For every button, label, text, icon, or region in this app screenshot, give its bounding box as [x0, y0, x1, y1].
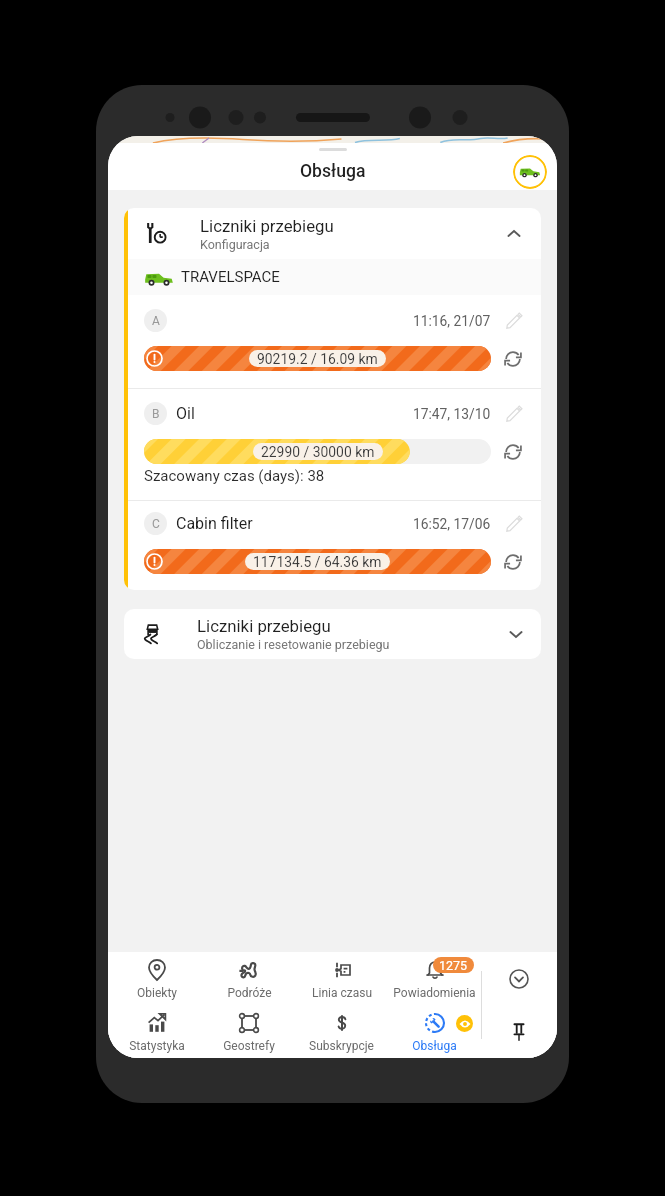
button[interactable]: B [128, 389, 541, 500]
staticText: Statystyka [129, 1039, 185, 1053]
staticText: Obsługa [300, 161, 366, 182]
button[interactable]: Pin [481, 1005, 557, 1058]
staticText: 11:16, 21/07 [413, 313, 491, 329]
staticText: 90219.2 / 16.09 km [257, 351, 378, 367]
button[interactable]: Subskrypcje [295, 1005, 388, 1058]
staticText: A [152, 314, 160, 328]
button[interactable]: Reset [502, 348, 524, 370]
button[interactable]: Edit [504, 404, 524, 424]
button[interactable]: Collapse [481, 952, 557, 1005]
staticText: TRAVELSPACE [181, 268, 280, 286]
staticText: 16:52, 17/06 [413, 516, 491, 532]
staticText: Liczniki przebiegu [200, 216, 334, 236]
staticText: Szacowany czas (days): 38 [144, 467, 325, 485]
staticText: Subskrypcje [309, 1039, 374, 1053]
staticText: 22990 / 30000 km [261, 444, 375, 460]
staticText: Powiadomienia [393, 986, 476, 1000]
button[interactable]: 1275 [388, 952, 481, 1005]
staticText: Konfiguracja [200, 237, 270, 252]
staticText: 1275 [439, 958, 468, 973]
button[interactable]: Podróże [203, 952, 295, 1005]
button[interactable]: Liczniki przebiegu [124, 609, 541, 659]
button[interactable]: Reset [502, 441, 524, 463]
staticText: Obsługa [412, 1039, 457, 1053]
staticText: B [152, 407, 160, 421]
button[interactable]: A [128, 295, 541, 388]
staticText: 17:47, 13/10 [413, 406, 491, 422]
button[interactable]: Geostrefy [203, 1005, 295, 1058]
button[interactable]: Obiekty [111, 952, 203, 1005]
button[interactable]: Liczniki przebiegu [128, 208, 541, 259]
button[interactable]: Obsługa [388, 1005, 481, 1058]
staticText: Podróże [227, 986, 272, 1000]
staticText: Obliczanie i resetowanie przebiegu [197, 637, 390, 652]
staticText: 117134.5 / 64.36 km [253, 554, 382, 570]
staticText: Geostrefy [223, 1039, 275, 1053]
button[interactable]: TRAVELSPACE [128, 259, 541, 295]
button[interactable]: Reset [502, 551, 524, 573]
button[interactable]: C [128, 501, 541, 590]
staticText: Obiekty [137, 986, 177, 1000]
button[interactable]: Edit [504, 514, 524, 534]
button[interactable]: Edit [504, 311, 524, 331]
button[interactable]: Vehicle [513, 155, 547, 189]
staticText: Cabin filter [176, 514, 253, 533]
button[interactable]: Statystyka [111, 1005, 203, 1058]
staticText: Liczniki przebiegu [197, 616, 331, 636]
staticText: Oil [176, 404, 195, 423]
staticText: Linia czasu [312, 986, 372, 1000]
button[interactable]: Linia czasu [295, 952, 388, 1005]
staticText: C [152, 517, 160, 531]
